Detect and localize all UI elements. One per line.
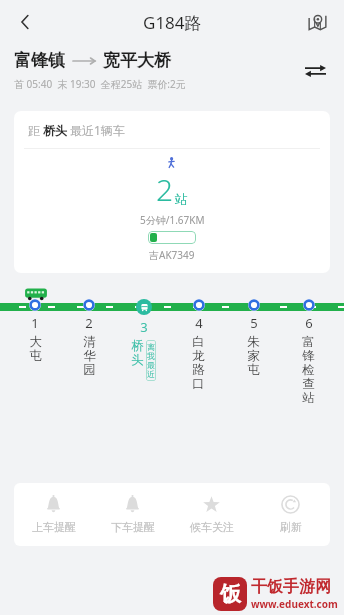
staticText: 候车关注 <box>190 520 234 534</box>
button[interactable]: Reverse direction <box>296 52 334 90</box>
button[interactable]: 1 <box>8 299 62 429</box>
staticText: 5分钟/1.67KM <box>140 213 205 227</box>
staticText: 2 <box>85 314 93 332</box>
staticText: 4 <box>195 314 203 332</box>
button[interactable]: 距 <box>14 111 330 273</box>
staticText: 富锋镇 <box>14 50 65 71</box>
button[interactable]: 下车提醒 <box>93 492 172 537</box>
staticText: 白 龙 路 口 <box>192 334 205 392</box>
button[interactable]: Back <box>6 3 44 41</box>
staticText: 桥头 <box>43 123 67 138</box>
staticText: 富 锋 检 查 站 <box>302 334 315 406</box>
staticText: 桥 头 <box>131 338 144 368</box>
staticText: 3 <box>140 318 148 336</box>
staticText: 饭 <box>220 581 241 607</box>
staticText: 刷新 <box>280 520 302 534</box>
button[interactable]: 6 <box>281 299 336 429</box>
staticText: 距 <box>28 123 40 138</box>
button[interactable]: Map <box>298 3 336 41</box>
button[interactable]: 候车关注 <box>172 492 251 537</box>
staticText: 离 我 最 近 <box>147 342 155 379</box>
staticText: 吉AK7349 <box>149 248 195 262</box>
staticText: 下车提醒 <box>111 520 155 534</box>
button[interactable]: 2 <box>62 299 116 429</box>
staticText: 宽平大桥 <box>103 50 171 71</box>
button[interactable]: 3 <box>116 299 171 429</box>
button[interactable]: 5 <box>226 299 281 429</box>
staticText: 站 <box>175 191 188 207</box>
staticText: 2 <box>156 169 174 210</box>
button[interactable]: 4 <box>171 299 226 429</box>
staticText: 清 华 园 <box>83 334 96 378</box>
button[interactable]: 上车提醒 <box>14 492 93 537</box>
staticText: www.eduext.com <box>251 597 338 611</box>
staticText: 6 <box>305 314 313 332</box>
staticText: 5 <box>250 314 258 332</box>
staticText: 朱 家 屯 <box>247 334 260 378</box>
staticText: 1 <box>31 314 39 332</box>
staticText: 大 屯 <box>29 334 42 364</box>
button[interactable]: 刷新 <box>251 492 330 537</box>
staticText: G184路 <box>143 11 202 34</box>
staticText: 上车提醒 <box>32 520 76 534</box>
staticText: 干饭手游网 <box>251 577 331 597</box>
staticText: 首 05:40 末 19:30 全程25站 票价:2元 <box>14 77 186 91</box>
staticText: 最近1辆车 <box>70 122 125 138</box>
